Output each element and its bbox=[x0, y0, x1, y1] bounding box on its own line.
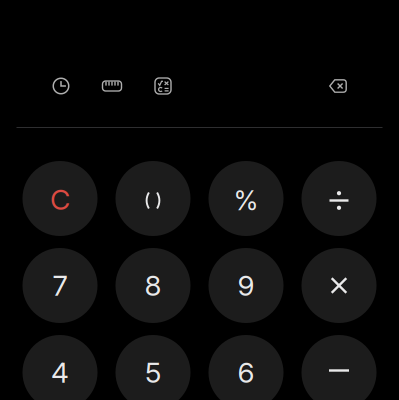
staticText: 9 bbox=[237, 269, 254, 302]
staticText: 4 bbox=[51, 356, 69, 389]
button[interactable]: 9 bbox=[208, 248, 283, 323]
button[interactable]: Convert bbox=[95, 69, 129, 103]
staticText: 6 bbox=[237, 356, 254, 389]
staticText: % bbox=[233, 184, 258, 217]
staticText: 5 bbox=[145, 356, 161, 389]
button[interactable]: Divide bbox=[301, 161, 376, 236]
button[interactable]: 7 bbox=[22, 248, 97, 323]
button[interactable]: % bbox=[208, 161, 283, 236]
staticText: C bbox=[50, 183, 70, 216]
staticText: 7 bbox=[52, 269, 67, 302]
button[interactable]: 4 bbox=[22, 335, 97, 400]
button[interactable]: Scientific bbox=[146, 69, 180, 103]
button[interactable]: History bbox=[44, 69, 78, 103]
button[interactable]: Subtract bbox=[301, 335, 376, 400]
button[interactable]: 5 bbox=[115, 335, 190, 400]
button[interactable]: Parentheses bbox=[115, 161, 190, 236]
button[interactable]: Delete bbox=[321, 69, 355, 103]
button[interactable]: C bbox=[22, 161, 97, 236]
staticText: 8 bbox=[144, 269, 161, 302]
button[interactable]: Multiply bbox=[301, 248, 376, 323]
button[interactable]: 8 bbox=[115, 248, 190, 323]
button[interactable]: 6 bbox=[208, 335, 283, 400]
